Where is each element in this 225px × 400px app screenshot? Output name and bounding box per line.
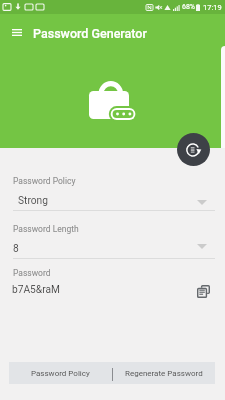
staticText: Strong [18,195,48,207]
staticText: Regenerate Password [125,369,203,378]
staticText: Password Policy [13,176,76,186]
staticText: 8 [13,243,19,255]
staticText: Password Generator [33,26,147,41]
button[interactable]: Regenerate Password [112,362,215,384]
staticText: Password Length [13,224,79,234]
button[interactable]: Regenerate password [177,133,210,166]
button[interactable]: Open navigation drawer [7,22,27,42]
button[interactable]: Expand dropdown [193,193,211,211]
button[interactable]: Password Policy [9,362,112,384]
staticText: Password Policy [31,369,90,378]
staticText: b7A5&raM [12,284,60,296]
staticText: 68% [182,3,195,11]
button[interactable]: Expand dropdown [193,237,211,255]
staticText: 17:19 [203,3,222,12]
button[interactable]: Copy password [194,282,212,300]
staticText: Password [13,268,51,278]
